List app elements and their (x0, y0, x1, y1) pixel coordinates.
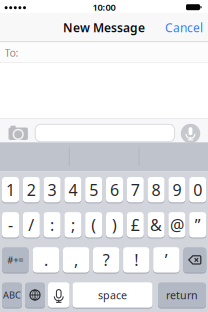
button[interactable]: @ (168, 212, 185, 237)
staticText: 1 (6, 179, 15, 200)
button[interactable]: To (0, 42, 208, 62)
staticText: New Message (63, 19, 145, 35)
staticText: / (28, 214, 34, 235)
button[interactable]: 6 (106, 177, 123, 202)
staticText: £ (131, 214, 140, 235)
staticText: ) (112, 214, 117, 235)
button[interactable]: Delete (183, 247, 206, 273)
button[interactable]: ! (123, 247, 149, 273)
staticText: ! (134, 249, 138, 270)
button[interactable]: 9 (168, 177, 185, 202)
button[interactable]: ( (85, 212, 102, 237)
staticText: - (8, 214, 13, 235)
staticText: 7 (131, 179, 140, 200)
staticText: Cancel (165, 19, 203, 35)
button[interactable]: 1 (2, 177, 19, 202)
button[interactable]: 5 (85, 177, 102, 202)
staticText: To: (4, 45, 18, 60)
button[interactable]: ) (106, 212, 123, 237)
staticText: ” (195, 214, 201, 235)
button[interactable]: ; (64, 212, 81, 237)
button[interactable]: & (148, 212, 165, 237)
staticText: ( (91, 214, 96, 235)
staticText: ’ (165, 249, 168, 270)
button[interactable]: , (63, 247, 89, 273)
button[interactable]: . (33, 247, 59, 273)
button[interactable]: - (2, 212, 19, 237)
button[interactable]: 0 (189, 177, 206, 202)
button[interactable]: ” (189, 212, 206, 237)
button[interactable]: / (23, 212, 40, 237)
button[interactable]: ? (93, 247, 119, 273)
staticText: ABC (3, 289, 21, 301)
staticText: : (50, 214, 54, 235)
staticText: #+= (7, 254, 23, 266)
staticText: 4 (68, 179, 77, 200)
staticText: return (166, 288, 198, 302)
staticText: & (150, 214, 162, 235)
staticText: 6 (110, 179, 119, 200)
button[interactable]: 7 (127, 177, 144, 202)
button[interactable]: Audio message (181, 124, 200, 143)
staticText: , (74, 249, 78, 270)
staticText: 9 (172, 179, 181, 200)
button[interactable]: Camera (6, 124, 30, 142)
staticText: . (44, 249, 48, 270)
button[interactable]: £ (127, 212, 144, 237)
button[interactable]: Message (35, 124, 174, 142)
button[interactable]: : (44, 212, 61, 237)
staticText: 0 (193, 179, 202, 200)
button[interactable]: Next keyboard (25, 282, 45, 308)
staticText: 2 (27, 179, 36, 200)
button[interactable]: #+= (2, 247, 28, 273)
staticText: ; (71, 214, 75, 235)
staticText: 3 (48, 179, 57, 200)
button[interactable]: 2 (23, 177, 40, 202)
button[interactable]: ’ (153, 247, 179, 273)
button[interactable]: 8 (148, 177, 165, 202)
button[interactable]: Cancel (162, 13, 206, 42)
staticText: ? (103, 249, 110, 270)
button[interactable]: Dictate (48, 282, 69, 308)
button[interactable]: space (72, 282, 152, 308)
button[interactable]: 3 (44, 177, 61, 202)
staticText: space (98, 288, 127, 302)
staticText: 8 (152, 179, 161, 200)
button[interactable]: return (158, 282, 206, 308)
button[interactable]: ABC (2, 282, 22, 308)
staticText: 10:00 (92, 1, 115, 13)
staticText: @ (170, 214, 184, 235)
button[interactable]: 4 (64, 177, 81, 202)
staticText: 5 (89, 179, 98, 200)
